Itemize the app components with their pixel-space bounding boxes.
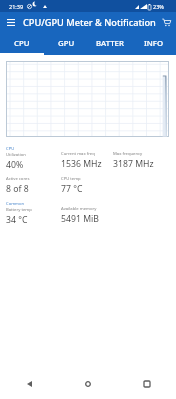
- button[interactable]: GPU: [44, 32, 88, 55]
- staticText: GPU: [58, 38, 75, 49]
- button[interactable]: Back: [0, 369, 58, 399]
- staticText: CPU temp: [61, 176, 81, 182]
- staticText: Current max freq: [61, 151, 95, 157]
- button[interactable]: Open navigation menu: [0, 12, 22, 32]
- staticText: Available memory: [61, 206, 97, 212]
- button[interactable]: CPU: [0, 32, 44, 55]
- button[interactable]: Home: [58, 369, 117, 399]
- button[interactable]: INFO: [132, 32, 176, 55]
- staticText: 23%: [153, 3, 164, 10]
- staticText: Utilization: [6, 152, 26, 158]
- staticText: 3187 MHz: [113, 158, 154, 170]
- staticText: 21:39: [9, 3, 24, 10]
- staticText: 1536 MHz: [61, 158, 102, 170]
- staticText: Common: [6, 201, 25, 207]
- staticText: BATTER: [96, 38, 124, 49]
- staticText: Active cores: [6, 176, 30, 182]
- staticText: INFO: [144, 38, 164, 49]
- staticText: 5491 MiB: [61, 213, 99, 225]
- staticText: Max frequency: [113, 151, 143, 157]
- staticText: 77 °C: [61, 183, 83, 195]
- staticText: Battery temp: [6, 207, 32, 213]
- button[interactable]: Shopping cart: [156, 12, 176, 32]
- staticText: 34 °C: [6, 214, 28, 226]
- staticText: 8 of 8: [6, 183, 29, 195]
- staticText: CPU: [14, 38, 30, 49]
- staticText: CPU/GPU Meter & Notification: [23, 16, 156, 29]
- button[interactable]: BATTER: [88, 32, 132, 55]
- staticText: CPU: [6, 146, 15, 152]
- button[interactable]: Recent apps: [117, 369, 176, 399]
- staticText: 40%: [6, 159, 24, 171]
